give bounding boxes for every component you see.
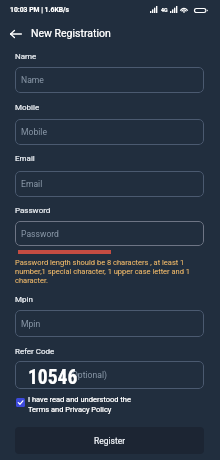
staticText: 10546	[28, 366, 78, 389]
staticText: Email	[15, 154, 35, 163]
button[interactable]: Back	[6, 24, 26, 44]
staticText: Password	[15, 206, 51, 215]
staticText: New Registration	[31, 27, 111, 39]
staticText: I have read and understood the Terms and…	[28, 395, 131, 413]
staticText: Name	[21, 75, 44, 85]
staticText: Email	[21, 179, 43, 189]
staticText: Mpin	[21, 319, 41, 329]
staticText: 4G	[161, 7, 168, 13]
staticText: 10:03 PM | 1.6KB/s	[10, 6, 70, 14]
staticText: Mobile	[15, 103, 40, 112]
button[interactable]: (Optional)	[15, 361, 204, 389]
button[interactable]: Mpin	[15, 310, 204, 337]
button[interactable]: I have read and understood the Terms and…	[16, 395, 131, 413]
staticText: Name	[15, 52, 37, 61]
staticText: Refer Code	[15, 347, 55, 356]
button[interactable]: Password	[15, 221, 204, 246]
staticText: Password	[21, 229, 59, 239]
staticText: Mobile	[21, 127, 47, 137]
button[interactable]: Mobile	[15, 119, 204, 145]
staticText: Mpin	[15, 295, 33, 304]
button[interactable]: Register	[15, 427, 204, 454]
button[interactable]: Name	[15, 67, 204, 93]
button[interactable]: Email	[15, 171, 204, 197]
staticText: Register	[94, 436, 126, 446]
staticText: (Optional)	[69, 370, 107, 380]
staticText: Password length should be 8 characters ,…	[15, 258, 190, 285]
